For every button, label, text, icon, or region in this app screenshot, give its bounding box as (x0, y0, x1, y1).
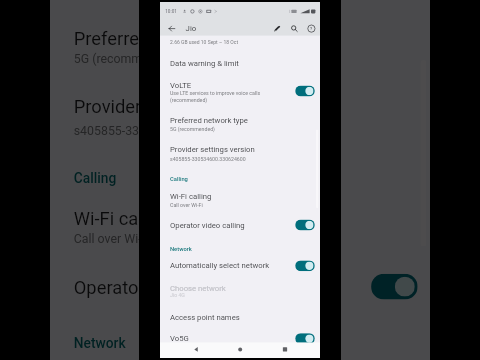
button[interactable]: Toggle (295, 333, 315, 344)
button[interactable]: Preferred network type (50, 12, 430, 78)
staticText: Operator video calling (74, 277, 251, 298)
button[interactable]: Recents (278, 342, 292, 356)
staticText: Calling (74, 170, 117, 186)
staticText: Access point names (170, 313, 240, 322)
button[interactable]: Automatically select network (160, 253, 320, 277)
button[interactable]: Toggle (371, 274, 418, 299)
staticText: s405855-330534600.330624600 (74, 124, 254, 138)
staticText: Data warning & limit (170, 58, 239, 68)
button[interactable]: Back (165, 22, 178, 35)
button[interactable]: Home (233, 342, 247, 356)
button[interactable]: Edit (270, 22, 283, 35)
staticText: 5G (recommended) (170, 126, 215, 132)
button[interactable]: VoLTE (50, 0, 430, 6)
staticText: Jio 4G (170, 292, 185, 298)
staticText: ? (310, 26, 312, 31)
staticText: Call over Wi-Fi (170, 202, 203, 208)
button[interactable]: Choose network (160, 278, 320, 305)
button[interactable]: Provider settings version (50, 80, 430, 148)
button[interactable]: Access point names (160, 306, 320, 328)
staticText: Provider settings version (170, 145, 255, 154)
staticText: Network (74, 335, 126, 352)
staticText: Calling (170, 176, 188, 183)
button[interactable]: Search (288, 22, 300, 35)
staticText: s405855-330534600.330624600 (170, 156, 246, 162)
staticText: VoLTE (170, 81, 192, 90)
button[interactable]: Operator video calling (160, 213, 320, 237)
button[interactable]: Wi-Fi calling (160, 185, 320, 213)
staticText: Use LTE services to improve voice calls … (170, 90, 260, 104)
staticText: 2.66 GB used 10 Sept – 18 Oct (170, 40, 238, 46)
staticText: Preferred network type (74, 28, 259, 50)
button[interactable]: Toggle (295, 260, 315, 271)
staticText: Vo5G (170, 334, 189, 343)
button[interactable]: Data warning & limit (160, 49, 320, 74)
staticText: Operator video calling (170, 221, 245, 230)
button[interactable]: Wi-Fi calling (50, 192, 430, 259)
staticText: Jio (186, 24, 196, 33)
staticText: Preferred network type (170, 116, 248, 125)
staticText: 5G (recommended) (74, 51, 181, 66)
button[interactable]: Back (189, 342, 203, 356)
staticText: Wi-Fi calling (170, 192, 212, 201)
staticText: Choose network (170, 284, 226, 293)
button[interactable]: Operator video calling (50, 259, 430, 316)
button[interactable]: Toggle (295, 86, 315, 96)
button[interactable]: Toggle (295, 220, 315, 230)
button[interactable]: VoLTE (160, 75, 320, 107)
staticText: Automatically select network (170, 261, 269, 270)
button[interactable]: Provider settings version (160, 138, 320, 167)
button[interactable]: Help (305, 22, 318, 35)
staticText: Call over Wi-Fi (74, 232, 152, 246)
button[interactable]: Preferred network type (160, 109, 320, 137)
staticText: Provider settings version (74, 96, 275, 118)
staticText: 10:01 (165, 9, 177, 14)
staticText: Network (170, 246, 192, 252)
button[interactable]: Automatically select network (50, 354, 430, 360)
staticText: Wi-Fi calling (74, 208, 173, 230)
button[interactable]: Vo5G (160, 328, 320, 348)
